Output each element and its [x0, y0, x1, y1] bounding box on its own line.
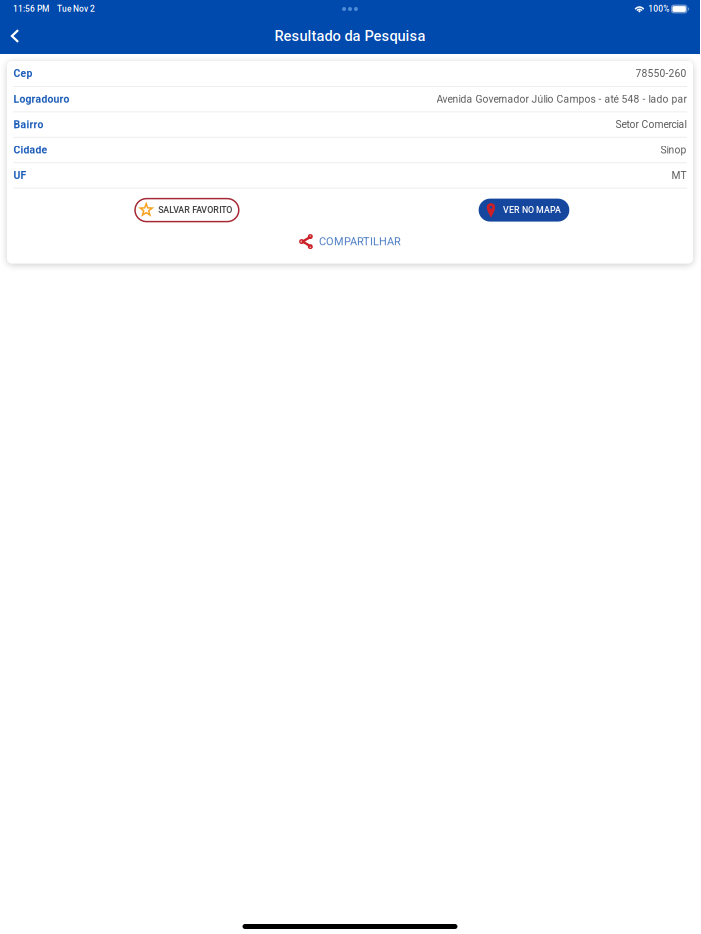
button[interactable]: COMPARTILHAR [293, 233, 407, 251]
staticText: COMPARTILHAR [319, 235, 401, 248]
staticText: Bairro [13, 118, 43, 131]
staticText: Cidade [13, 144, 47, 156]
staticText: VER NO MAPA [503, 205, 561, 215]
staticText: MT [672, 169, 687, 181]
staticText: SALVAR FAVORITO [158, 205, 232, 215]
staticText: Setor Comercial [616, 119, 687, 131]
staticText: Avenida Governador Júlio Campos - até 54… [437, 93, 687, 105]
staticText: Tue Nov 2 [57, 4, 95, 14]
staticText: Logradouro [13, 93, 69, 105]
button[interactable]: VER NO MAPA [479, 199, 569, 222]
staticText: Cep [13, 67, 32, 80]
staticText: 11:56 PM [13, 4, 49, 14]
staticText: 100% [648, 4, 669, 14]
staticText: Resultado da Pesquisa [274, 27, 425, 45]
staticText: Sinop [661, 144, 687, 156]
button[interactable]: Back [0, 18, 30, 54]
staticText: 78550-260 [636, 67, 687, 79]
staticText: UF [13, 169, 26, 181]
button[interactable]: SALVAR FAVORITO [135, 199, 239, 222]
